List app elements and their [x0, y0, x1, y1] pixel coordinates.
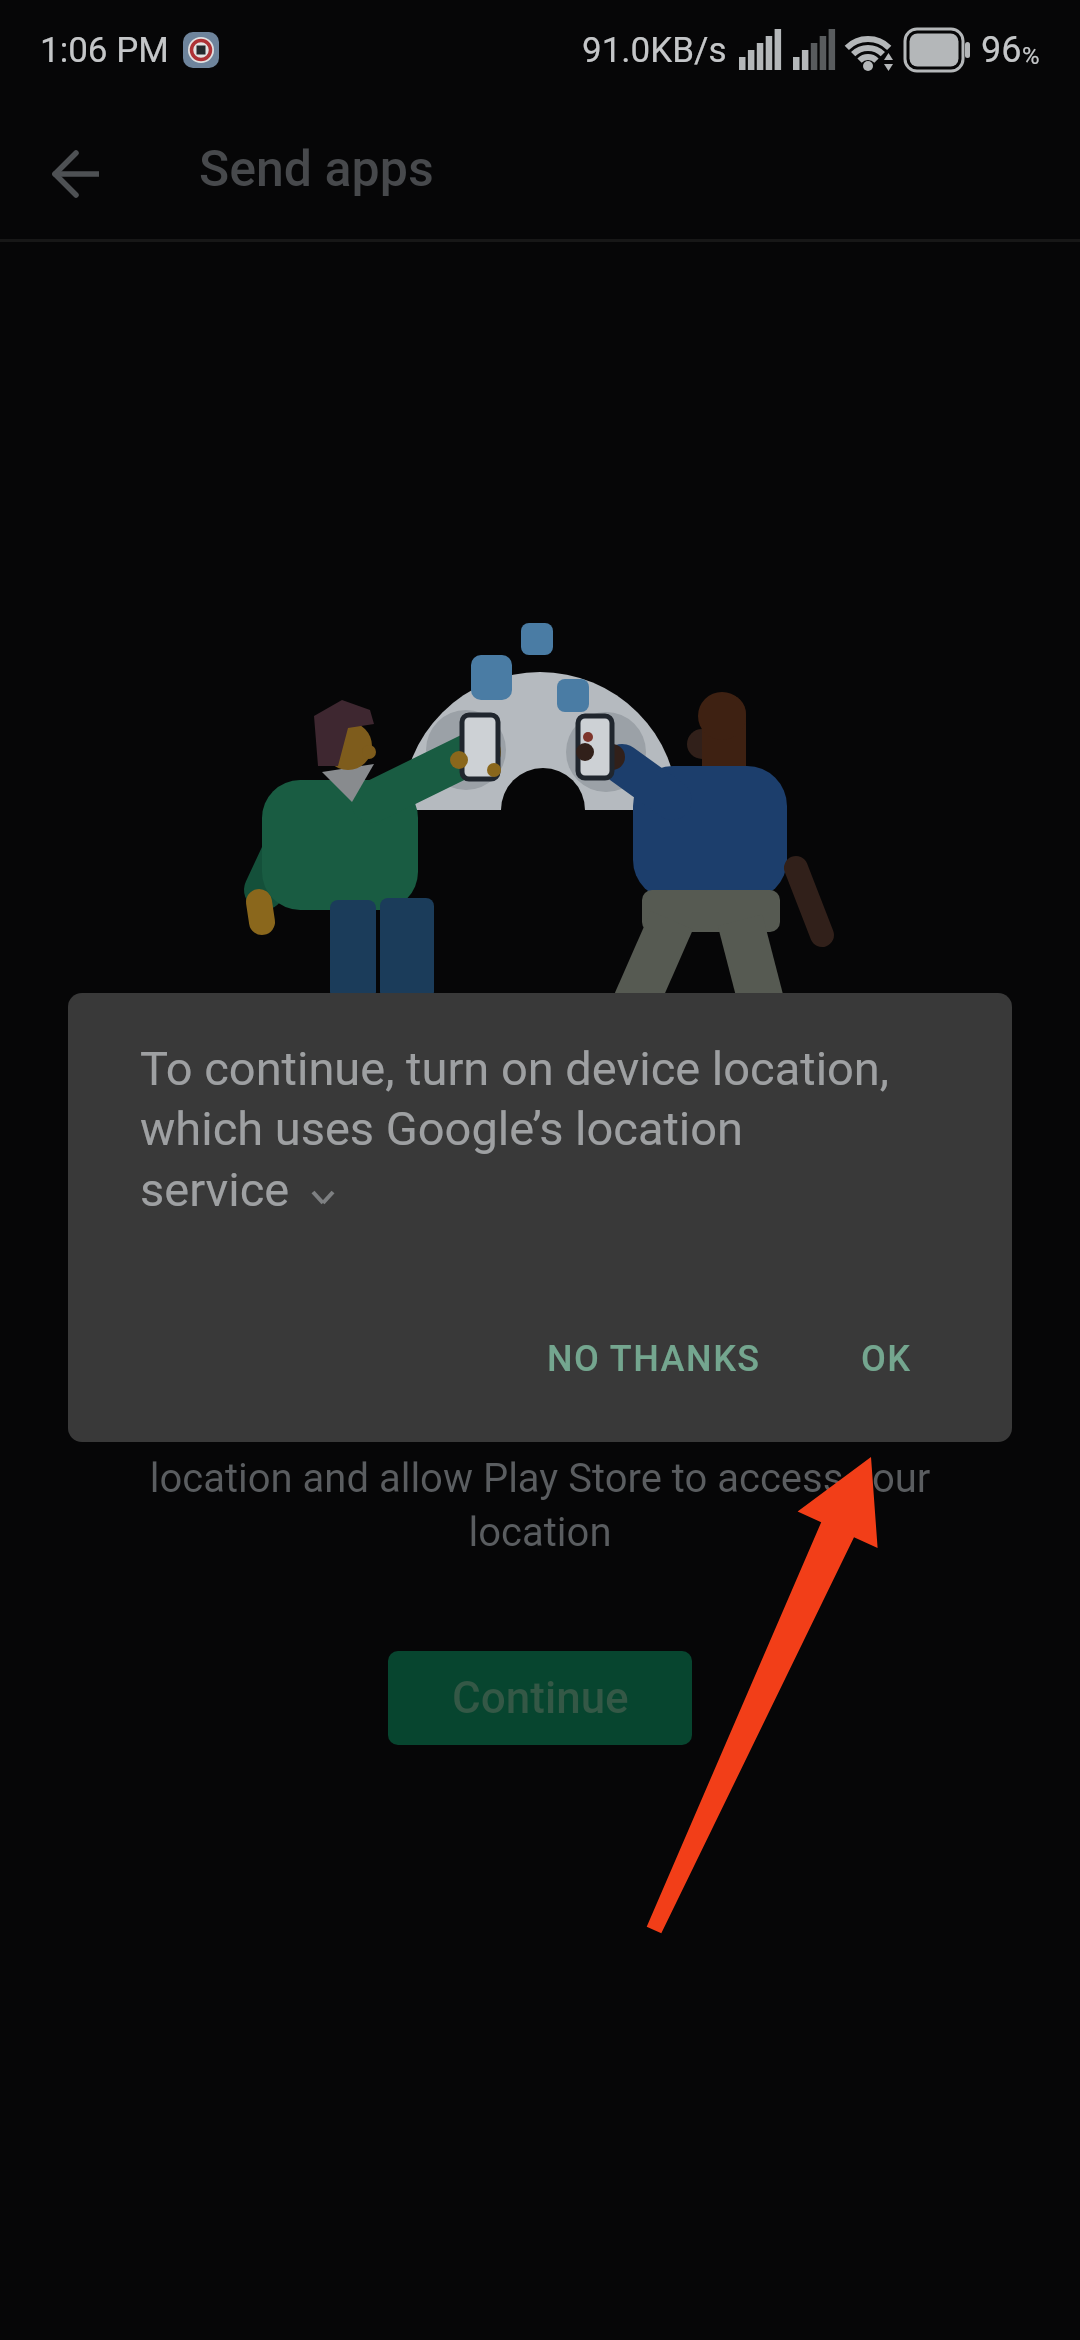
- button[interactable]: [40, 140, 114, 210]
- button[interactable]: NO THANKS: [547, 1338, 761, 1380]
- staticText: OK: [861, 1338, 912, 1380]
- staticText: 1:06 PM: [40, 30, 169, 71]
- staticText: location and allow Play Store to access …: [0, 1455, 1080, 1556]
- staticText: 96: [981, 29, 1022, 71]
- staticText: 91.0KB/s: [582, 30, 727, 71]
- staticText: NO THANKS: [547, 1338, 761, 1380]
- button[interactable]: OK: [861, 1338, 912, 1380]
- staticText: Continue: [452, 1672, 629, 1724]
- staticText: %: [1022, 42, 1040, 70]
- staticText: To continue, turn on device location, wh…: [140, 1041, 890, 1218]
- button[interactable]: Continue: [388, 1651, 692, 1745]
- staticText: Send apps: [199, 140, 434, 199]
